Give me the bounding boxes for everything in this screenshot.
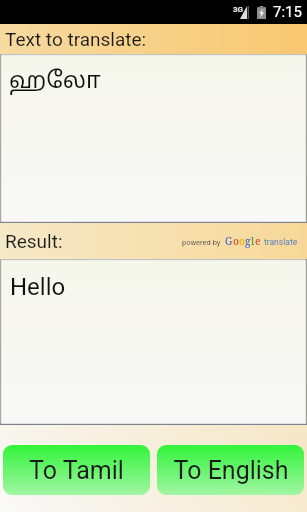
button[interactable]: Hello xyxy=(0,259,307,425)
staticText: 7:15 xyxy=(273,3,302,21)
button[interactable]: To English xyxy=(157,445,304,495)
staticText: Result: xyxy=(5,230,63,252)
staticText: o xyxy=(233,234,239,248)
staticText: g xyxy=(245,234,251,248)
button[interactable]: Powered by Google Translate xyxy=(182,234,298,248)
staticText: l xyxy=(251,234,255,248)
button[interactable]: ஹலோ xyxy=(0,54,307,223)
button[interactable]: To Tamil xyxy=(3,445,150,495)
staticText: powered by xyxy=(182,238,221,247)
staticText: Text to translate: xyxy=(5,28,147,50)
staticText: 3G xyxy=(233,5,244,14)
staticText: o xyxy=(239,234,245,248)
staticText: To English xyxy=(173,456,289,485)
staticText: To Tamil xyxy=(29,456,124,485)
staticText: ஹலோ xyxy=(9,68,101,97)
staticText: G xyxy=(225,234,233,248)
staticText: Hello xyxy=(10,273,66,301)
staticText: translate xyxy=(264,237,298,247)
staticText: e xyxy=(255,234,261,248)
